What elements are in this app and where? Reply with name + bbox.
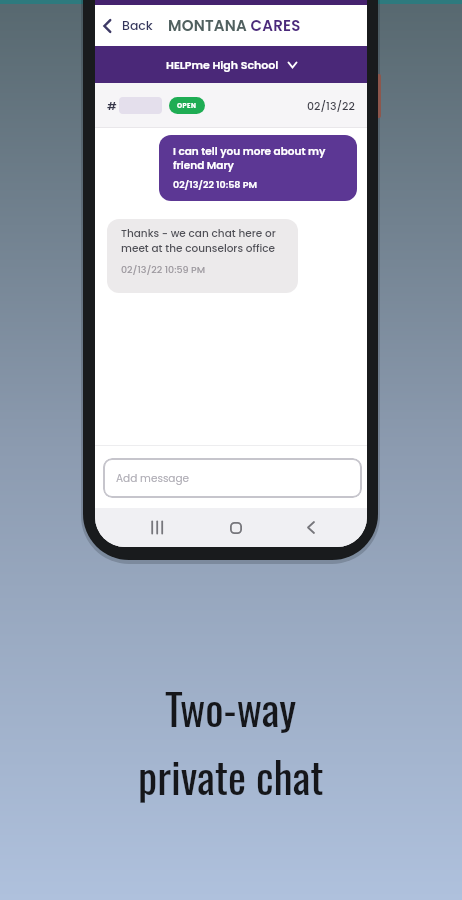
staticText: HELPme High School — [166, 57, 279, 72]
button[interactable]: Back — [95, 17, 153, 34]
staticText: 02/13/22 10:59 PM — [121, 263, 206, 276]
staticText: OPEN — [177, 101, 197, 110]
button[interactable] — [230, 522, 242, 534]
staticText: Back — [122, 17, 153, 34]
staticText: MONTANA CARES — [168, 15, 301, 36]
button[interactable]: I can tell you more about my friend Mary — [159, 135, 357, 201]
button[interactable] — [151, 521, 164, 534]
button[interactable] — [307, 521, 315, 534]
staticText: Two-way — [165, 676, 297, 740]
button[interactable]: Add message — [103, 458, 362, 498]
button[interactable]: OPEN — [169, 97, 205, 114]
staticText: 02/13/22 10:58 PM — [173, 178, 257, 191]
button[interactable]: Thanks - we can chat here or meet at the… — [107, 219, 298, 293]
staticText: private chat — [138, 744, 324, 808]
staticText: # — [107, 98, 117, 113]
staticText: 02/13/22 — [307, 98, 355, 113]
staticText: Thanks - we can chat here or meet at the… — [121, 226, 276, 256]
staticText: Add message — [116, 471, 190, 486]
button[interactable]: HELPme High School — [95, 46, 367, 83]
staticText: I can tell you more about my friend Mary — [173, 144, 326, 173]
